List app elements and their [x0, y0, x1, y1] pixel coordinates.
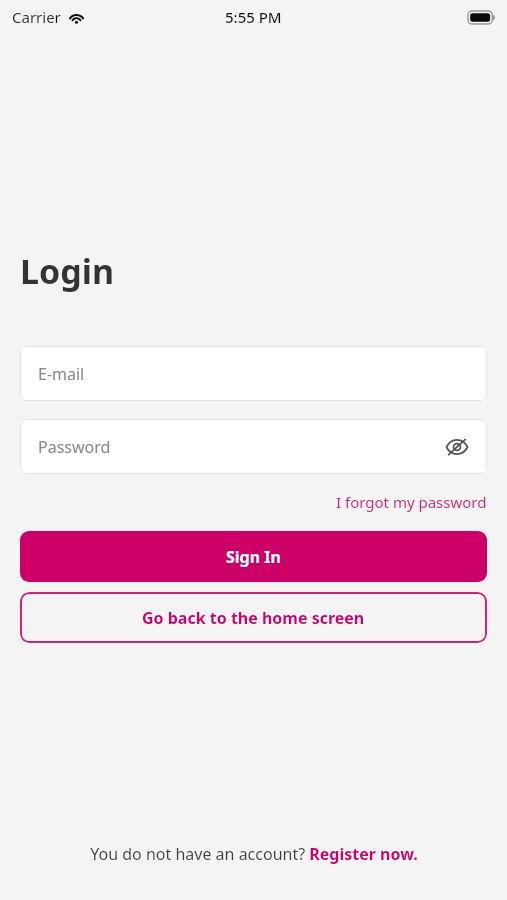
- staticText: E-mail: [38, 363, 85, 385]
- staticText: You do not have an account? Register now…: [90, 843, 418, 865]
- staticText: Login: [20, 248, 115, 294]
- button[interactable]: Sign In: [20, 531, 487, 582]
- button[interactable]: Password: [20, 419, 487, 474]
- button[interactable]: You do not have an account? Register now…: [90, 843, 418, 865]
- button[interactable]: E-mail: [20, 346, 487, 401]
- button[interactable]: Show password: [439, 429, 475, 465]
- staticText: Password: [38, 436, 111, 458]
- staticText: I forgot my password: [336, 492, 487, 512]
- staticText: 5:55 PM: [225, 7, 282, 27]
- staticText: Go back to the home screen: [142, 607, 365, 629]
- button[interactable]: Go back to the home screen: [20, 592, 487, 643]
- staticText: Carrier: [12, 7, 61, 27]
- staticText: Sign In: [226, 546, 281, 568]
- button[interactable]: I forgot my password: [336, 490, 487, 514]
